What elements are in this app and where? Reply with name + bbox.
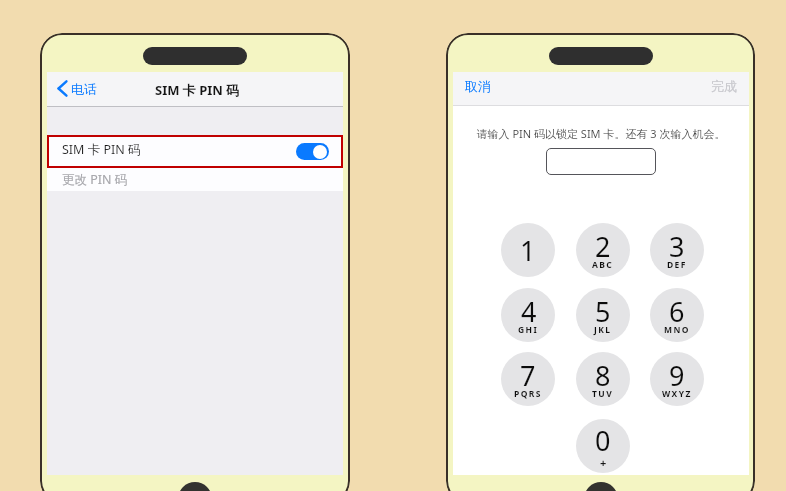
button[interactable]: 8 xyxy=(576,352,630,406)
button[interactable]: 1 xyxy=(501,223,555,277)
button[interactable]: 取消 xyxy=(465,78,491,94)
button[interactable]: Home xyxy=(584,482,618,491)
staticText: 8 xyxy=(595,357,611,394)
staticText: DEF xyxy=(667,259,687,271)
staticText: PQRS xyxy=(514,388,542,400)
button[interactable]: SIM PIN on/off switch xyxy=(296,143,329,160)
staticText: 9 xyxy=(669,357,685,394)
staticText: ABC xyxy=(592,259,614,271)
button[interactable]: SIM 卡 PIN 码 xyxy=(47,135,343,168)
staticText: 4 xyxy=(521,293,537,330)
staticText: 6 xyxy=(669,293,685,330)
staticText: 电话 xyxy=(71,81,97,97)
button[interactable]: 4 xyxy=(501,288,555,342)
button[interactable]: 0 xyxy=(576,419,630,473)
staticText: MNO xyxy=(664,324,690,336)
staticText: 更改 PIN 码 xyxy=(62,171,128,188)
staticText: 1 xyxy=(520,232,536,269)
staticText: SIM 卡 PIN 码 xyxy=(155,81,240,99)
button[interactable]: 3 xyxy=(650,223,704,277)
staticText: 2 xyxy=(595,228,611,265)
staticText: 3 xyxy=(669,228,685,265)
staticText: 7 xyxy=(520,357,536,394)
button[interactable]: 7 xyxy=(501,352,555,406)
button[interactable]: 6 xyxy=(650,288,704,342)
staticText: TUV xyxy=(592,388,614,400)
button[interactable]: 2 xyxy=(576,223,630,277)
staticText: JKL xyxy=(594,324,612,336)
staticText: GHI xyxy=(518,324,539,336)
staticText: + xyxy=(600,455,607,470)
button[interactable]: PIN entry field xyxy=(546,148,656,175)
staticText: 0 xyxy=(595,422,611,459)
staticText: 请输入 PIN 码以锁定 SIM 卡。还有 3 次输入机会。 xyxy=(453,126,749,141)
button[interactable]: 更改 PIN 码 xyxy=(47,168,343,191)
button[interactable]: 完成 xyxy=(711,78,737,94)
staticText: SIM 卡 PIN 码 xyxy=(62,141,141,158)
button[interactable]: Back to 电话 xyxy=(57,80,97,97)
button[interactable]: 9 xyxy=(650,352,704,406)
staticText: 5 xyxy=(595,293,611,330)
button[interactable]: 5 xyxy=(576,288,630,342)
staticText: WXYZ xyxy=(662,388,692,400)
button[interactable]: Home xyxy=(178,482,212,491)
